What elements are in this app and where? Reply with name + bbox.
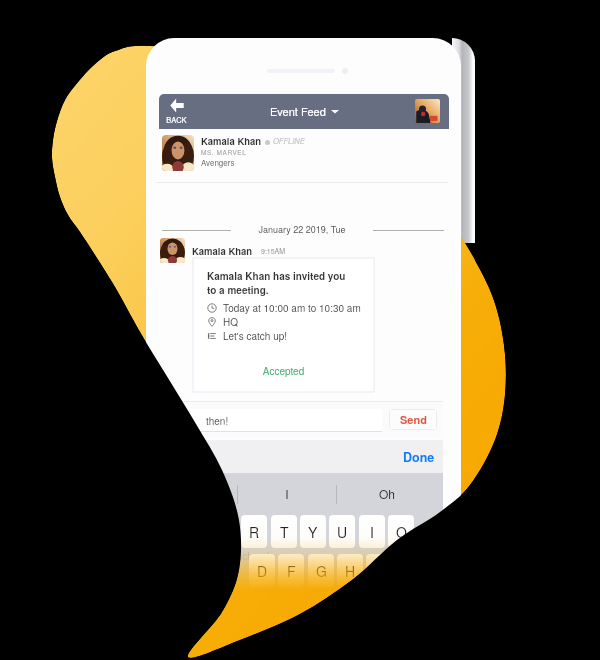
button[interactable]: Done — [396, 440, 442, 474]
button[interactable] — [146, 409, 382, 431]
staticText: F — [287, 561, 296, 581]
button[interactable]: U — [329, 515, 355, 548]
staticText: D — [257, 561, 268, 581]
staticText: Avengers — [201, 157, 235, 168]
staticText: HQ — [223, 315, 238, 329]
button[interactable]: Kamala Khan — [156, 130, 448, 181]
staticText: Kamala Khan — [201, 134, 262, 148]
staticText: January 22 2019, Tue — [237, 223, 367, 236]
staticText: 9:15AM — [261, 246, 286, 256]
staticText: Done — [403, 448, 435, 466]
staticText: R — [249, 522, 260, 542]
button[interactable]: Event Feed — [270, 103, 339, 119]
staticText: I — [370, 522, 374, 542]
staticText: Accepted — [193, 364, 374, 378]
staticText: I — [260, 485, 314, 502]
staticText: T — [280, 522, 289, 542]
staticText: BACK — [162, 114, 191, 125]
staticText: G — [316, 561, 327, 581]
staticText: O — [396, 522, 407, 542]
staticText: then! — [206, 414, 229, 428]
staticText: U — [337, 522, 348, 542]
staticText: Oh — [360, 485, 414, 502]
button[interactable]: Profile — [415, 99, 440, 123]
staticText: Today at 10:00 am to 10:30 am — [223, 301, 361, 315]
button[interactable]: Back — [159, 94, 199, 129]
button[interactable]: T — [271, 515, 297, 548]
button[interactable]: I — [359, 515, 385, 548]
staticText: MS. MARVEL — [201, 148, 247, 157]
button[interactable]: Send — [389, 409, 437, 430]
button[interactable]: Y — [300, 515, 326, 548]
staticText: Event Feed — [270, 103, 326, 119]
staticText: catch up! — [229, 549, 270, 563]
staticText: H — [345, 561, 356, 581]
staticText: OFFLINE — [273, 136, 305, 147]
staticText: Kamala Khan has invited you to a meeting… — [207, 269, 346, 297]
button[interactable]: R — [241, 515, 267, 548]
staticText: Let's catch up! — [223, 329, 288, 343]
staticText: Send — [400, 412, 427, 428]
button[interactable]: O — [388, 515, 414, 548]
staticText: Kamala Khan — [192, 244, 253, 258]
button[interactable]: Kamala Khan has invited you to a meeting… — [193, 258, 374, 392]
staticText: Y — [308, 522, 318, 542]
staticText: Accepted — [241, 584, 283, 598]
